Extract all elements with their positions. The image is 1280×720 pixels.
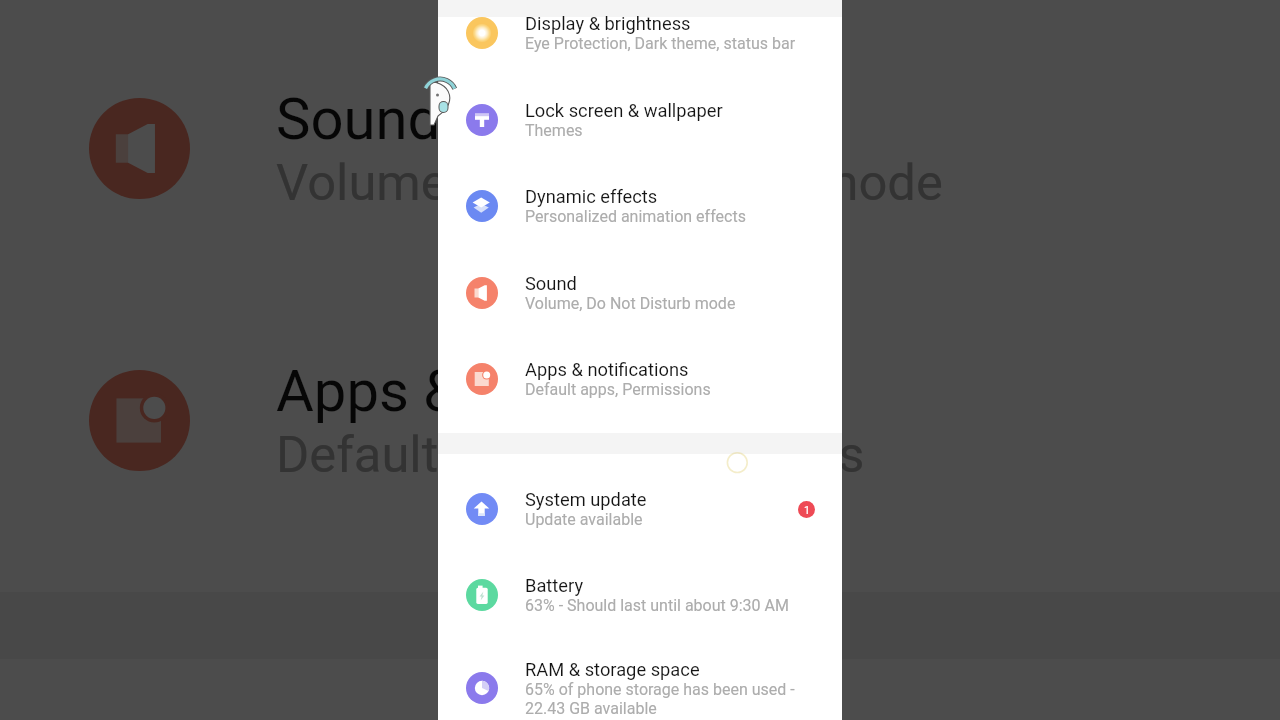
- button[interactable]: Battery: [438, 552, 842, 638]
- staticText: Themes: [525, 121, 583, 140]
- staticText: Apps & notifications: [525, 359, 689, 380]
- staticText: Volume, Do Not Disturb mode: [525, 294, 736, 313]
- button[interactable]: Sound: [0, 12, 1280, 285]
- button[interactable]: Dynamic effects: [0, 0, 1280, 9]
- staticText: Battery: [525, 575, 584, 596]
- button[interactable]: Display & brightness: [438, 0, 842, 76]
- staticText: Lock screen & wallpaper: [525, 100, 723, 121]
- staticText: Volume, Do Not Disturb mode: [276, 153, 943, 212]
- staticText: Personalized animation effects: [525, 207, 746, 226]
- button[interactable]: Apps & notifications: [0, 284, 1280, 557]
- staticText: 65% of phone storage has been used -: [525, 680, 795, 699]
- button[interactable]: Apps & notifications: [438, 336, 842, 422]
- button[interactable]: Lock screen & wallpaper: [438, 77, 842, 163]
- staticText: Default apps, Permissions: [276, 425, 865, 484]
- staticText: 63% - Should last until about 9:30 AM: [525, 596, 789, 615]
- button[interactable]: System update: [438, 466, 842, 552]
- staticText: Apps & notifications: [276, 357, 795, 425]
- staticText: Display & brightness: [525, 13, 691, 34]
- button[interactable]: Dynamic effects: [438, 163, 842, 249]
- staticText: Sound: [525, 273, 577, 294]
- staticText: Eye Protection, Dark theme, status bar: [525, 34, 796, 53]
- staticText: 22.43 GB available: [525, 699, 657, 718]
- staticText: RAM & storage space: [525, 659, 700, 680]
- staticText: 1: [804, 504, 810, 516]
- staticText: Default apps, Permissions: [525, 380, 711, 399]
- staticText: Dynamic effects: [525, 186, 658, 207]
- staticText: Update available: [525, 510, 643, 529]
- staticText: System update: [525, 489, 647, 510]
- staticText: Sound: [276, 85, 441, 153]
- button[interactable]: Sound: [438, 250, 842, 336]
- button[interactable]: RAM & storage space: [438, 645, 842, 720]
- button[interactable]: System update: [0, 696, 1280, 720]
